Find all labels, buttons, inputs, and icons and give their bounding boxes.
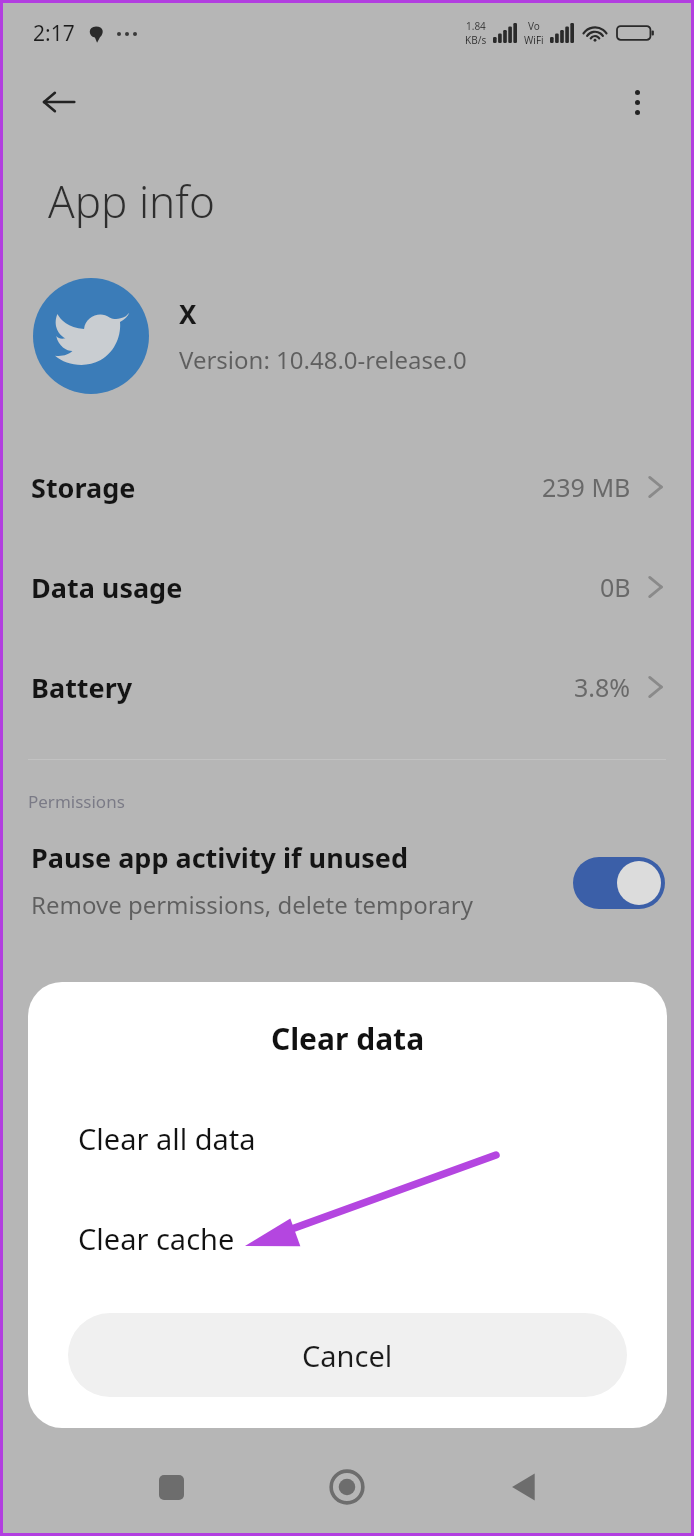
- button[interactable]: Back: [495, 1459, 551, 1515]
- staticText: Clear all data: [78, 1119, 256, 1158]
- staticText: Battery: [31, 669, 133, 706]
- button[interactable]: Storage: [3, 437, 691, 537]
- staticText: Version: 10.48.0-release.0: [179, 343, 467, 376]
- staticText: Vo: [528, 19, 540, 33]
- staticText: Pause app activity if unused: [31, 839, 408, 876]
- staticText: X: [179, 296, 197, 331]
- staticText: App info: [48, 171, 215, 231]
- button[interactable]: [573, 857, 665, 909]
- button[interactable]: Clear cache: [28, 1205, 667, 1271]
- button[interactable]: Clear all data: [28, 1105, 667, 1171]
- staticText: WiFi: [524, 33, 544, 47]
- staticText: Permissions: [28, 790, 125, 813]
- staticText: 3.8%: [574, 670, 631, 704]
- staticText: 239 MB: [542, 470, 631, 504]
- staticText: Data usage: [31, 569, 183, 606]
- staticText: KB/s: [465, 33, 487, 47]
- button[interactable]: Home: [319, 1459, 375, 1515]
- button[interactable]: Back: [33, 76, 85, 128]
- staticText: Storage: [31, 469, 136, 506]
- staticText: 0B: [600, 570, 631, 604]
- staticText: 2:17: [33, 19, 75, 48]
- button[interactable]: Battery: [3, 637, 691, 737]
- button[interactable]: Data usage: [3, 537, 691, 637]
- staticText: Clear data: [28, 1018, 667, 1059]
- staticText: Remove permissions, delete temporary: [31, 888, 473, 921]
- button[interactable]: Cancel: [68, 1313, 627, 1397]
- staticText: 1.84: [466, 19, 486, 33]
- button[interactable]: Recent apps: [143, 1459, 199, 1515]
- staticText: Cancel: [302, 1336, 393, 1375]
- button[interactable]: More options: [611, 76, 663, 128]
- button[interactable]: Pause app activity if unused: [3, 839, 691, 921]
- staticText: Clear cache: [78, 1219, 235, 1258]
